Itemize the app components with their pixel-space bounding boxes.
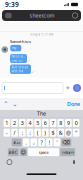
button[interactable]: . bbox=[23, 138, 29, 146]
staticText: Hey bbox=[12, 46, 16, 50]
button[interactable]: #+= bbox=[12, 138, 22, 146]
staticText: 7 bbox=[51, 119, 54, 127]
button[interactable]: ' bbox=[54, 138, 60, 146]
staticText: ⌄ bbox=[12, 100, 18, 108]
staticText: 2 bbox=[13, 119, 16, 127]
staticText: Done bbox=[67, 100, 80, 108]
button[interactable]: space bbox=[28, 148, 59, 156]
staticText: @ bbox=[66, 129, 71, 136]
button[interactable]: , bbox=[30, 138, 37, 146]
staticText: space bbox=[38, 149, 48, 155]
button[interactable]: ⌫ bbox=[61, 138, 71, 146]
button[interactable]: Previous field bbox=[3, 100, 9, 107]
button[interactable]: Add bbox=[64, 84, 71, 91]
button[interactable]: ( bbox=[34, 129, 41, 137]
button[interactable]: 1 bbox=[3, 119, 10, 127]
button[interactable]: - bbox=[3, 129, 10, 137]
staticText: 5 bbox=[36, 119, 39, 127]
button[interactable]: 8 bbox=[57, 119, 64, 127]
staticText: Need some bbox=[11, 55, 26, 58]
button[interactable]: ☺ bbox=[20, 148, 27, 156]
button[interactable]: 5 bbox=[34, 119, 41, 127]
staticText: 3 bbox=[21, 119, 24, 127]
staticText: 4 bbox=[28, 119, 31, 127]
button[interactable]: ; bbox=[27, 129, 33, 137]
staticText: ⌫ bbox=[62, 139, 70, 145]
button[interactable]: return bbox=[60, 148, 75, 156]
button[interactable]: Emoji bbox=[7, 160, 12, 165]
staticText: Sure lets go bbox=[11, 65, 28, 69]
button[interactable]: Dictate bbox=[73, 160, 75, 164]
staticText: with that bbox=[11, 69, 23, 73]
staticText: 9 bbox=[67, 119, 70, 127]
staticText: #+= bbox=[13, 140, 20, 145]
staticText: " bbox=[75, 129, 77, 136]
button[interactable]: Page settings bbox=[4, 12, 13, 19]
staticText: The bbox=[37, 110, 46, 117]
staticText: & bbox=[59, 129, 63, 136]
button[interactable]: @ bbox=[65, 129, 72, 137]
button[interactable]: ABC bbox=[8, 148, 19, 156]
staticText: 0 bbox=[75, 119, 78, 127]
staticText: Somethius bbox=[10, 39, 31, 44]
staticText: $ bbox=[51, 129, 54, 136]
button[interactable]: ! bbox=[46, 138, 52, 146]
staticText: ; bbox=[29, 129, 30, 136]
staticText: ✓ bbox=[32, 70, 35, 74]
staticText: ) bbox=[44, 129, 46, 136]
staticText: - bbox=[6, 129, 8, 136]
staticText: , bbox=[33, 139, 34, 146]
button[interactable]: & bbox=[57, 129, 64, 137]
button[interactable]: ) bbox=[42, 129, 49, 137]
button[interactable]: " bbox=[73, 129, 79, 137]
button[interactable]: Send bbox=[73, 84, 81, 92]
staticText: 8 bbox=[59, 119, 62, 127]
button[interactable]: 7 bbox=[50, 119, 56, 127]
staticText: ✓ bbox=[28, 59, 31, 63]
staticText: ABC bbox=[9, 149, 18, 155]
button[interactable]: 6 bbox=[42, 119, 49, 127]
staticText: ! bbox=[49, 139, 50, 146]
staticText: : bbox=[22, 129, 23, 136]
staticText: ? bbox=[40, 139, 42, 146]
button[interactable]: Done bbox=[67, 100, 80, 108]
button[interactable]: 3 bbox=[19, 119, 25, 127]
button[interactable]: 4 bbox=[27, 119, 33, 127]
button[interactable]: 2 bbox=[11, 119, 18, 127]
staticText: 9:39 bbox=[5, 0, 19, 9]
button[interactable]: : bbox=[19, 129, 25, 137]
button[interactable]: ? bbox=[38, 138, 45, 146]
staticText: ⌃ bbox=[3, 100, 9, 108]
staticText: return bbox=[62, 149, 73, 155]
staticText: 6 bbox=[44, 119, 47, 127]
button[interactable]: 9 bbox=[65, 119, 72, 127]
staticText: / bbox=[13, 129, 15, 136]
button[interactable]: Next field bbox=[12, 100, 18, 107]
button[interactable]: $ bbox=[50, 129, 56, 137]
staticText: ✦ bbox=[65, 84, 71, 92]
staticText: 1 bbox=[5, 119, 8, 127]
staticText: Today at 9:39 AM bbox=[30, 33, 53, 36]
staticText: ☺ bbox=[20, 149, 26, 155]
staticText: sheer.com bbox=[29, 12, 54, 19]
staticText: ' bbox=[56, 139, 57, 146]
staticText: ( bbox=[37, 129, 39, 136]
button[interactable]: 0 bbox=[73, 119, 79, 127]
staticText: time to? bbox=[11, 59, 22, 62]
button[interactable]: / bbox=[11, 129, 18, 137]
staticText: . bbox=[26, 139, 27, 146]
button[interactable]: Reload bbox=[71, 12, 79, 19]
